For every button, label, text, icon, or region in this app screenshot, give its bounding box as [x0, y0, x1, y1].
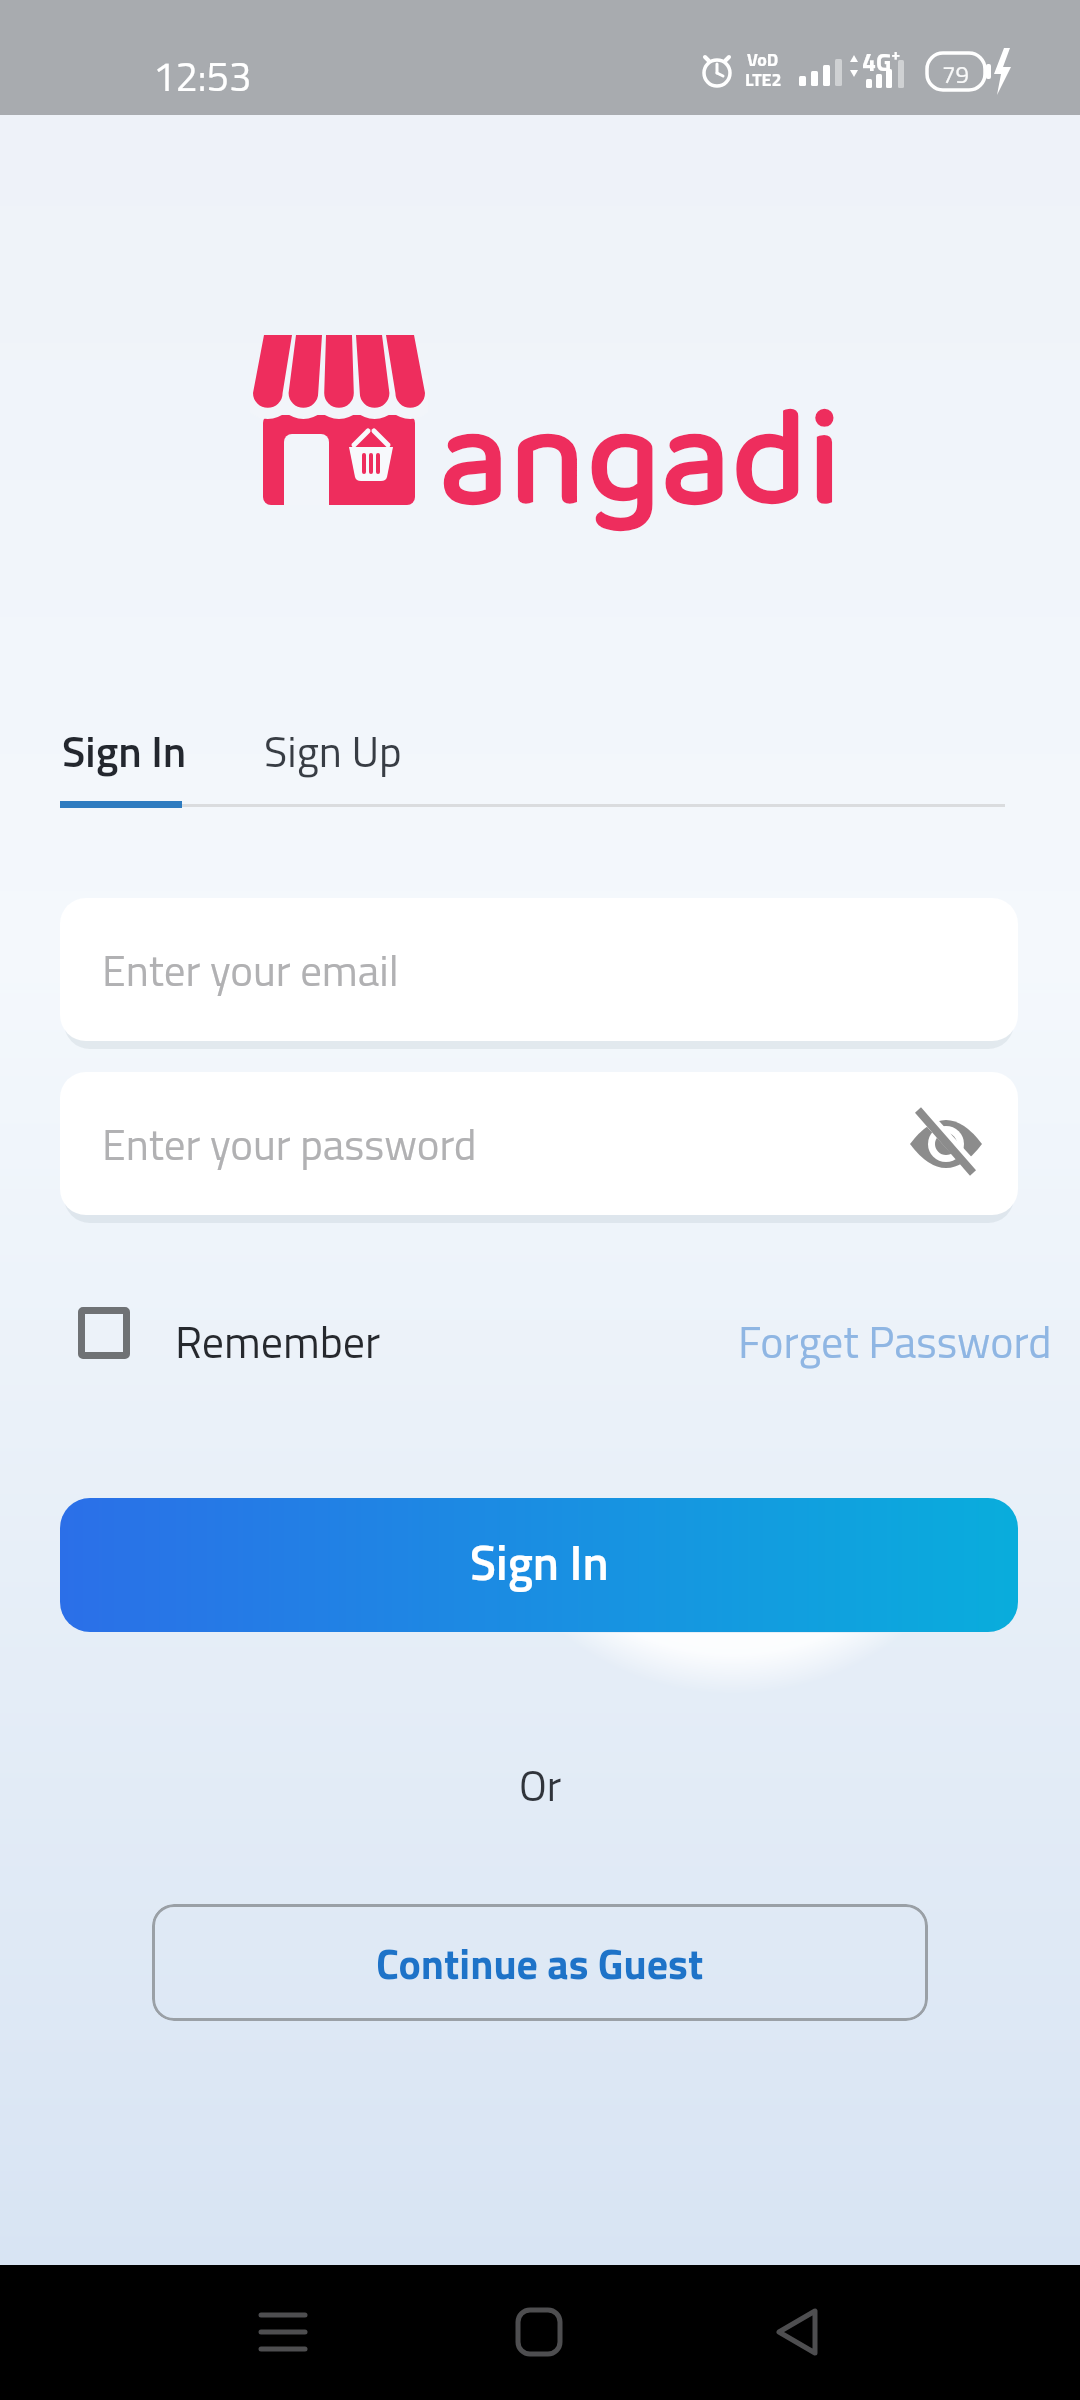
button[interactable] [78, 1307, 130, 1359]
staticText: 4G⁺ [862, 43, 901, 81]
staticText: Enter your email [102, 937, 399, 1002]
button[interactable] [495, 2288, 585, 2378]
button[interactable]: Sign In [62, 718, 187, 783]
button[interactable] [910, 1114, 982, 1174]
button[interactable]: Enter your email [60, 898, 1018, 1041]
staticText: Sign In [470, 1526, 609, 1599]
staticText: Remember [175, 1308, 381, 1375]
button[interactable]: Enter your password [60, 1072, 1018, 1215]
button[interactable]: Sign Up [264, 718, 402, 783]
staticText: Or [519, 1753, 562, 1817]
button[interactable]: Forget Password [738, 1308, 1052, 1375]
button[interactable]: Sign In [60, 1498, 1018, 1632]
button[interactable] [754, 2288, 844, 2378]
staticText: Continue as Guest [376, 1931, 704, 1995]
button[interactable] [239, 2288, 329, 2378]
staticText: angadi [440, 353, 843, 572]
staticText: 79 [942, 56, 969, 93]
staticText: VoD [747, 46, 779, 73]
staticText: 12:53 [153, 46, 252, 107]
staticText: LTE2 [745, 66, 782, 93]
button[interactable]: Continue as Guest [152, 1904, 928, 2021]
staticText: Enter your password [102, 1111, 477, 1176]
